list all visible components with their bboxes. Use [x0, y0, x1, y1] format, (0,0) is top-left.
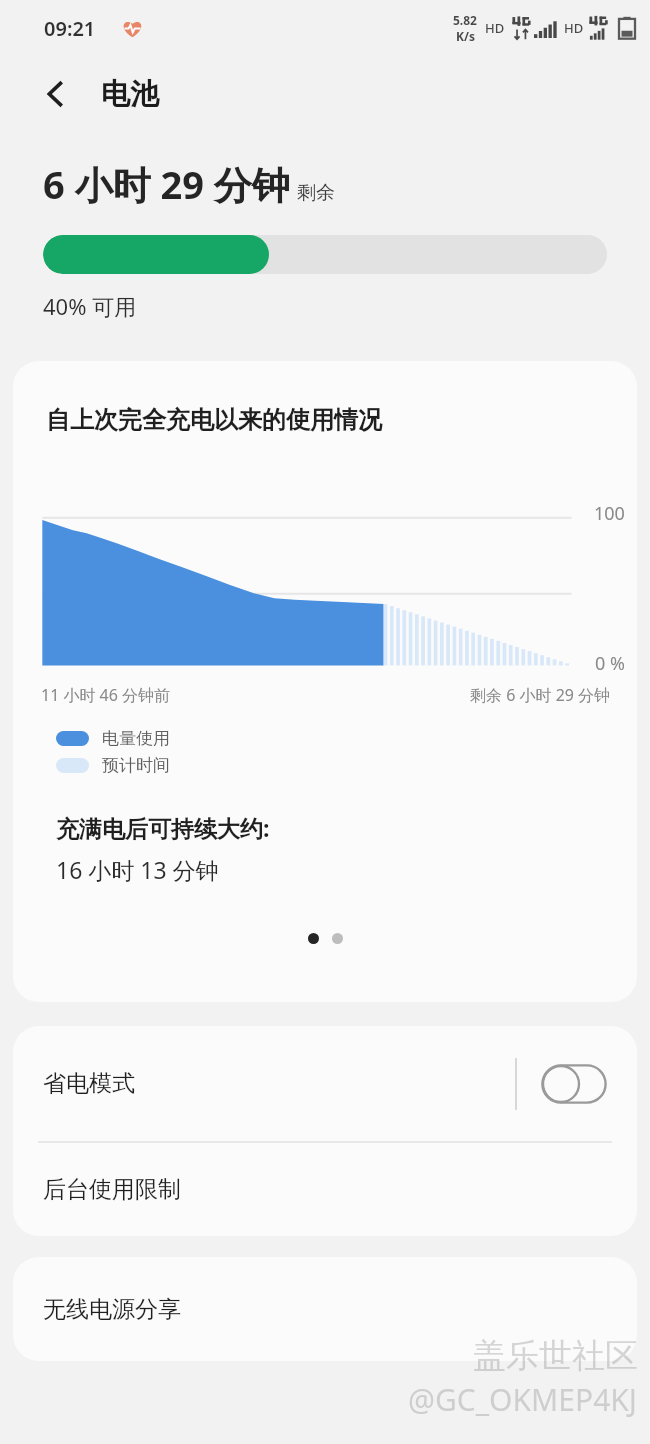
staticText: 6 小时 29 分钟 [43, 158, 290, 210]
button[interactable]: 后台使用限制 [13, 1143, 637, 1236]
staticText: 盖乐世社区 [473, 1335, 638, 1377]
staticText: 11 小时 46 分钟前 [41, 684, 171, 706]
staticText: @GC_OKMEP4KJ [408, 1379, 638, 1420]
staticText: K/s [456, 28, 475, 44]
button[interactable]: 无线电源分享 [13, 1257, 637, 1361]
staticText: 充满电后可持续大约: [56, 812, 270, 843]
staticText: 09:21 [44, 15, 96, 42]
button[interactable]: Back [26, 64, 86, 124]
staticText: 省电模式 [43, 1069, 135, 1098]
staticText: 100 [594, 501, 625, 526]
staticText: HD [564, 19, 584, 37]
staticText: 电池 [101, 76, 159, 113]
staticText: 剩余 6 小时 29 分钟 [470, 684, 611, 706]
staticText: 自上次完全充电以来的使用情况 [46, 405, 382, 435]
staticText: 无线电源分享 [43, 1295, 181, 1324]
staticText: 40% 可用 [43, 291, 137, 321]
staticText: 后台使用限制 [43, 1175, 181, 1204]
staticText: 16 小时 13 分钟 [56, 854, 219, 885]
staticText: 电量使用 [102, 728, 170, 749]
staticText: HD [485, 19, 505, 37]
button[interactable]: 省电模式 [541, 1064, 607, 1104]
button[interactable]: 省电模式 [13, 1026, 637, 1141]
staticText: 剩余 [297, 181, 335, 205]
staticText: 预计时间 [102, 755, 170, 776]
staticText: 5.82 [453, 12, 477, 28]
staticText: 0 % [595, 651, 625, 676]
